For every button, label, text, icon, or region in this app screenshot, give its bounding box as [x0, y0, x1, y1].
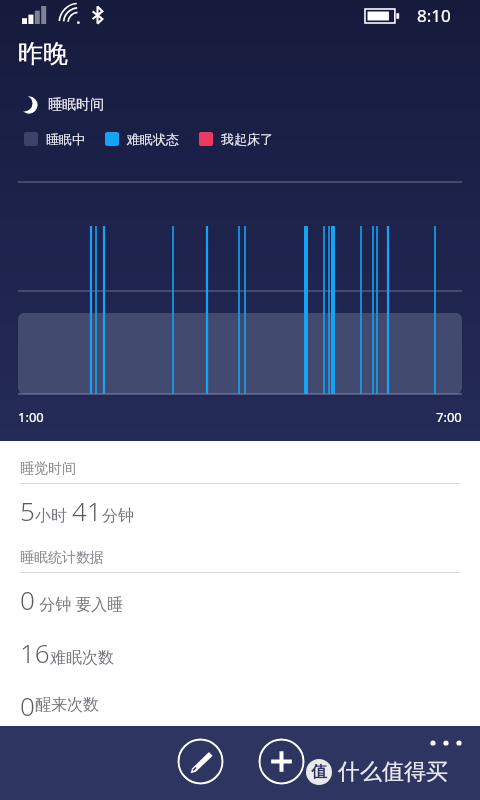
button[interactable]: Add [258, 738, 305, 785]
staticText: 难眠次数 [50, 648, 114, 668]
staticText: 睡眠中 [46, 131, 85, 147]
staticText: 值 [311, 762, 327, 782]
staticText: 7:00 [436, 408, 462, 426]
staticText: 分钟 [102, 506, 134, 526]
button[interactable]: Edit [177, 738, 224, 785]
staticText: 1:00 [18, 408, 44, 426]
staticText: 小时 [35, 504, 72, 526]
staticText: 睡眠时间 [48, 96, 104, 114]
staticText: 睡眠统计数据 [20, 549, 104, 567]
staticText: 什么值得买 [338, 758, 448, 786]
staticText: 分钟 要入睡 [35, 593, 124, 615]
staticText: 5 [20, 493, 35, 528]
staticText: 8:10 [417, 4, 451, 27]
staticText: 难眠状态 [127, 131, 179, 147]
staticText: 昨晚 [18, 38, 68, 69]
button[interactable]: More options [424, 730, 468, 756]
staticText: 醒来次数 [35, 695, 99, 715]
staticText: 我起床了 [221, 131, 273, 147]
staticText: 0 [20, 688, 35, 717]
staticText: 41 [72, 493, 102, 528]
staticText: 睡觉时间 [20, 460, 76, 478]
staticText: 16 [20, 635, 50, 670]
staticText: 0 [20, 582, 35, 617]
